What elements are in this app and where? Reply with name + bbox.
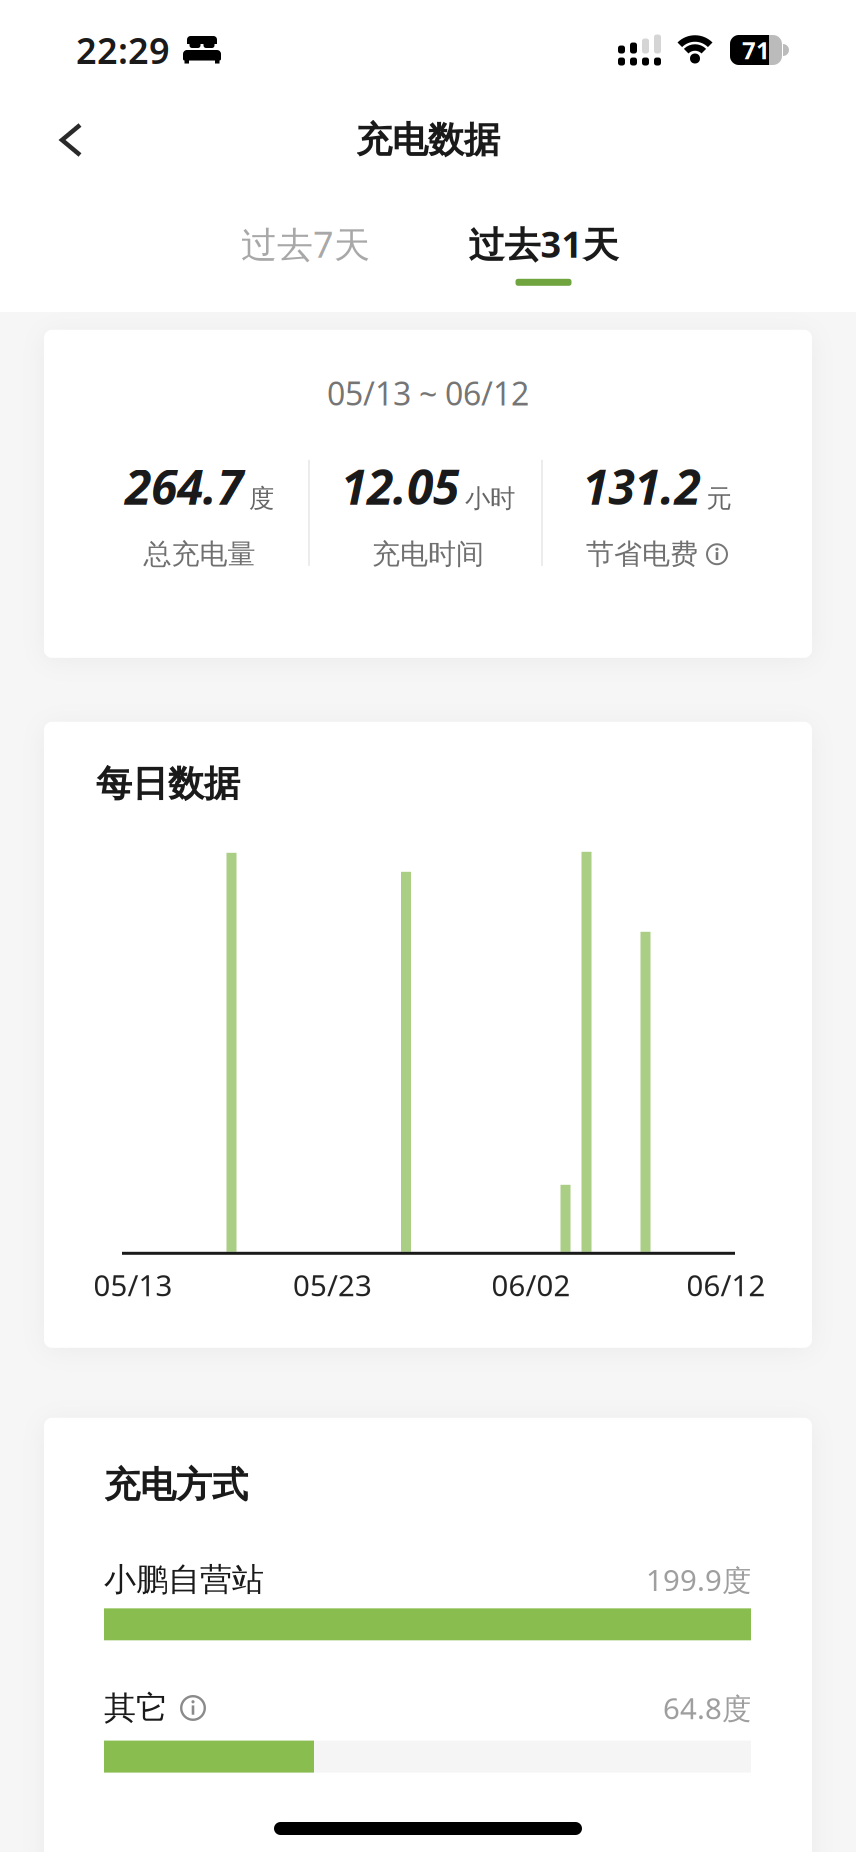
- button[interactable]: 过去31天: [424, 220, 662, 286]
- staticText: 总充电量: [143, 537, 255, 571]
- staticText: 充电时间: [372, 537, 484, 571]
- staticText: 05/23: [293, 1265, 372, 1304]
- staticText: 小鹏自营站: [104, 1560, 264, 1599]
- staticText: 05/13: [93, 1265, 172, 1304]
- staticText: 05/13 ~ 06/12: [327, 372, 529, 414]
- staticText: 元: [706, 483, 731, 514]
- staticText: 过去31天: [468, 220, 618, 268]
- staticText: 22:29: [76, 26, 170, 74]
- button[interactable]: [180, 1695, 206, 1721]
- button[interactable]: [706, 543, 728, 565]
- button[interactable]: [0, 103, 82, 177]
- staticText: 节省电费: [586, 537, 698, 571]
- staticText: 64.8度: [663, 1688, 751, 1727]
- staticText: 12.05: [341, 454, 459, 518]
- staticText: 264.7: [125, 454, 243, 518]
- staticText: 小时: [465, 483, 515, 514]
- staticText: 131.2: [582, 454, 700, 518]
- staticText: 每日数据: [96, 762, 240, 806]
- button[interactable]: 过去7天: [186, 220, 424, 286]
- staticText: 充电方式: [104, 1463, 248, 1507]
- staticText: 199.9度: [646, 1560, 751, 1599]
- staticText: 充电数据: [356, 118, 500, 162]
- staticText: 度: [249, 483, 274, 514]
- staticText: 06/12: [686, 1265, 765, 1304]
- staticText: 过去7天: [241, 220, 370, 268]
- staticText: 71: [742, 34, 770, 66]
- staticText: 其它: [104, 1688, 168, 1728]
- staticText: 06/02: [491, 1265, 570, 1304]
